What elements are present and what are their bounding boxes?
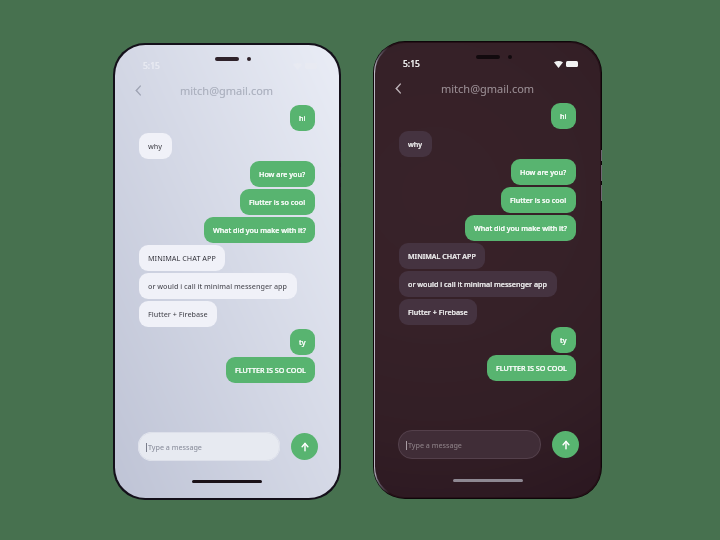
button[interactable]: ty	[551, 327, 576, 353]
staticText: Flutter + Firebase	[408, 307, 468, 317]
staticText: mitch@gmail.com	[180, 83, 274, 98]
staticText: How are you?	[520, 167, 567, 177]
staticText: What did you make with it?	[474, 223, 567, 233]
button[interactable]: FLUTTER IS SO COOL	[487, 355, 576, 381]
button[interactable]: MINIMAL CHAT APP	[399, 243, 485, 269]
button[interactable]: Back	[128, 80, 148, 100]
button[interactable]: What did you make with it?	[204, 217, 315, 243]
staticText: Flutter is so cool	[249, 197, 306, 207]
button[interactable]: Flutter is so cool	[240, 189, 315, 215]
staticText: or would i call it minimal messenger app	[408, 279, 548, 289]
button[interactable]: How are you?	[511, 159, 576, 185]
staticText: or would i call it minimal messenger app	[148, 281, 288, 291]
button[interactable]: or would i call it minimal messenger app	[139, 273, 297, 299]
staticText: Flutter is so cool	[510, 195, 567, 205]
staticText: 5:15	[403, 58, 420, 70]
button[interactable]: Type a message	[138, 432, 280, 461]
button[interactable]: Send	[552, 431, 579, 458]
button[interactable]: FLUTTER IS SO COOL	[226, 357, 315, 383]
button[interactable]: hi	[290, 105, 315, 131]
button[interactable]: ty	[290, 329, 315, 355]
staticText: hi	[560, 111, 567, 121]
staticText: hi	[299, 113, 306, 123]
staticText: why	[408, 139, 423, 149]
staticText: ty	[299, 337, 306, 347]
button[interactable]: How are you?	[250, 161, 315, 187]
staticText: FLUTTER IS SO COOL	[496, 363, 567, 373]
staticText: mitch@gmail.com	[441, 81, 535, 96]
staticText: Flutter + Firebase	[148, 309, 208, 319]
staticText: MINIMAL CHAT APP	[148, 253, 216, 263]
staticText: ty	[560, 335, 567, 345]
staticText: FLUTTER IS SO COOL	[235, 365, 306, 375]
button[interactable]: What did you make with it?	[465, 215, 576, 241]
staticText: why	[148, 141, 163, 151]
button[interactable]: Flutter + Firebase	[399, 299, 477, 325]
button[interactable]: or would i call it minimal messenger app	[399, 271, 557, 297]
button[interactable]: hi	[551, 103, 576, 129]
staticText: Type a message	[148, 442, 202, 452]
button[interactable]: why	[399, 131, 432, 157]
staticText: 5:15	[143, 60, 160, 72]
button[interactable]: Send	[291, 433, 318, 460]
button[interactable]: Flutter is so cool	[501, 187, 576, 213]
staticText: MINIMAL CHAT APP	[408, 251, 476, 261]
button[interactable]: Type a message	[398, 430, 541, 459]
staticText: How are you?	[259, 169, 306, 179]
button[interactable]: why	[139, 133, 172, 159]
button[interactable]: Flutter + Firebase	[139, 301, 217, 327]
staticText: Type a message	[408, 440, 462, 450]
staticText: What did you make with it?	[213, 225, 306, 235]
button[interactable]: Back	[388, 78, 408, 98]
button[interactable]: MINIMAL CHAT APP	[139, 245, 225, 271]
